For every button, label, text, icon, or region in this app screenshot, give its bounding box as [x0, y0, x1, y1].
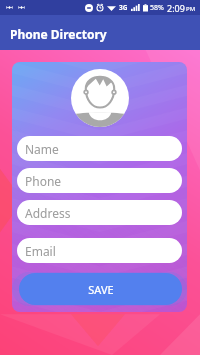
- button[interactable]: SAVE: [19, 273, 182, 305]
- staticText: 3G: [119, 3, 128, 12]
- staticText: PM: [186, 5, 196, 13]
- staticText: SAVE: [88, 282, 114, 297]
- staticText: Name: [25, 141, 59, 157]
- button[interactable]: Email: [17, 238, 182, 263]
- button[interactable]: Address: [17, 200, 182, 225]
- staticText: 58%: [150, 3, 164, 13]
- staticText: Phone: [25, 173, 62, 189]
- staticText: Email: [25, 243, 56, 259]
- button[interactable]: Name: [17, 136, 182, 161]
- staticText: Address: [25, 205, 71, 221]
- staticText: 2:09: [167, 2, 185, 14]
- staticText: Phone Directory: [10, 26, 107, 42]
- button[interactable]: Phone: [17, 168, 182, 193]
